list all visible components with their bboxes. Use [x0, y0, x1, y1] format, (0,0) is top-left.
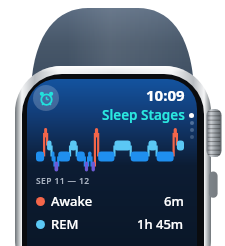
button[interactable]: Awake: [27, 191, 197, 211]
staticText: 1h 45m: [137, 215, 184, 233]
staticText: SEP 11 — 12: [36, 175, 90, 187]
staticText: Awake: [51, 192, 93, 210]
button[interactable]: Alarm: [33, 85, 59, 111]
staticText: 10:09: [146, 85, 185, 105]
staticText: Sleep Stages: [102, 106, 185, 124]
staticText: REM: [51, 215, 79, 233]
staticText: 6m: [164, 192, 184, 210]
button[interactable]: REM: [27, 214, 197, 234]
